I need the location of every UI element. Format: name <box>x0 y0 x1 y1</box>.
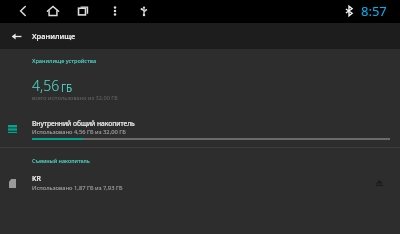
staticText: KR <box>32 174 41 184</box>
button[interactable]: Recent apps <box>74 2 92 20</box>
staticText: ГБ <box>61 81 73 95</box>
staticText: всего использовано из 32,00 ГБ <box>32 94 118 102</box>
staticText: 4,56 <box>32 76 60 95</box>
button[interactable]: Back <box>14 2 32 20</box>
button[interactable]: Eject <box>370 173 389 192</box>
button[interactable]: USB connected <box>135 2 153 20</box>
button[interactable]: Внутренний общий накопитель <box>0 110 400 147</box>
staticText: Съемный накопитель <box>32 157 90 164</box>
staticText: 8:57 <box>361 2 387 20</box>
button[interactable]: Navigate up <box>7 27 25 45</box>
staticText: Хранилище устройства <box>32 57 97 65</box>
staticText: Внутренний общий накопитель <box>32 119 135 128</box>
button[interactable]: Home <box>44 2 62 20</box>
button[interactable]: More options <box>106 2 124 20</box>
staticText: Хранилище <box>32 31 76 41</box>
button[interactable]: KR <box>0 170 400 198</box>
button[interactable]: Bluetooth <box>340 2 357 19</box>
staticText: Использовано 4,56 ГБ из 32,00 ГБ <box>32 128 126 136</box>
staticText: Использовано 1,87 ГБ из 7,93 ГБ <box>32 184 123 192</box>
